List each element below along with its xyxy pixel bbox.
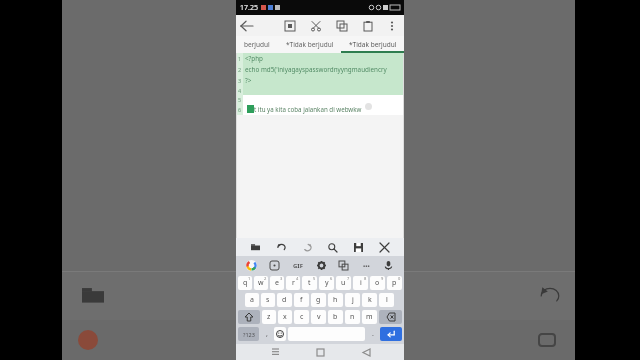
staticText: z: [267, 312, 271, 322]
staticText: g: [316, 295, 321, 305]
button[interactable]: ?123: [238, 327, 259, 341]
staticText: 3: [280, 276, 283, 281]
button[interactable]: Close: [378, 241, 391, 254]
staticText: 7: [347, 276, 350, 281]
button[interactable]: f: [294, 293, 309, 307]
button[interactable]: GIF: [290, 259, 306, 272]
button[interactable]: c: [294, 310, 309, 324]
staticText: v: [317, 312, 321, 322]
staticText: u: [341, 278, 346, 288]
button[interactable]: Paste: [358, 16, 378, 36]
button[interactable]: Search: [326, 241, 339, 254]
button[interactable]: s: [261, 293, 275, 307]
button[interactable]: Translate: [337, 259, 350, 272]
button[interactable]: .: [366, 327, 379, 341]
staticText: ?>: [245, 76, 252, 85]
button[interactable]: g: [311, 293, 326, 307]
button[interactable]: Redo: [301, 241, 314, 254]
staticText: d: [282, 295, 287, 305]
staticText: w: [258, 278, 264, 288]
button[interactable]: 2: [254, 276, 268, 290]
staticText: q: [243, 278, 248, 288]
button[interactable]: 4: [286, 276, 300, 290]
staticText: s: [266, 295, 270, 305]
button[interactable]: z: [262, 310, 276, 324]
staticText: y: [325, 278, 329, 288]
button[interactable]: 0: [387, 276, 402, 290]
button[interactable]: Recent apps: [268, 345, 282, 359]
button[interactable]: m: [362, 310, 377, 324]
button[interactable]: *Tidak berjudul: [341, 36, 404, 53]
staticText: ?123: [243, 331, 255, 338]
staticText: p: [392, 278, 397, 288]
staticText: 4: [238, 87, 242, 94]
button[interactable]: 7: [336, 276, 351, 290]
staticText: r: [292, 278, 295, 288]
staticText: k: [368, 295, 372, 305]
staticText: 9: [381, 276, 384, 281]
button[interactable]: Back: [359, 345, 373, 359]
staticText: x: [283, 312, 287, 322]
staticText: t: [308, 278, 311, 288]
button[interactable]: 9: [370, 276, 385, 290]
button[interactable]: 5: [302, 276, 317, 290]
button[interactable]: Settings: [315, 259, 328, 272]
staticText: 3: [238, 77, 242, 84]
staticText: <?php: [245, 54, 263, 63]
button[interactable]: Backspace: [379, 310, 402, 324]
button[interactable]: Back: [236, 15, 257, 36]
staticText: i: [360, 278, 362, 288]
staticText: 1: [238, 55, 242, 62]
button[interactable]: j: [345, 293, 360, 307]
button[interactable]: 3: [270, 276, 284, 290]
button[interactable]: d: [277, 293, 292, 307]
button[interactable]: More options: [382, 16, 402, 36]
staticText: c: [300, 312, 304, 322]
staticText: n: [350, 312, 355, 322]
button[interactable]: b: [328, 310, 343, 324]
button[interactable]: Copy: [332, 16, 352, 36]
button[interactable]: More: [360, 259, 373, 272]
button[interactable]: Undo: [275, 241, 288, 254]
staticText: h: [333, 295, 338, 305]
staticText: l: [386, 295, 388, 305]
staticText: 5: [238, 96, 242, 103]
button[interactable]: Save: [352, 241, 365, 254]
staticText: e: [275, 278, 279, 288]
button[interactable]: Voice input: [382, 259, 395, 272]
button[interactable]: n: [345, 310, 360, 324]
button[interactable]: 8: [353, 276, 368, 290]
staticText: 6: [330, 276, 333, 281]
button[interactable]: h: [328, 293, 343, 307]
button[interactable]: 1: [238, 276, 252, 290]
button[interactable]: x: [278, 310, 292, 324]
button[interactable]: Google: [245, 259, 258, 272]
button[interactable]: a: [245, 293, 259, 307]
button[interactable]: Cut: [306, 16, 326, 36]
button[interactable]: berjudul: [236, 36, 278, 53]
button[interactable]: Open file: [249, 241, 262, 254]
button[interactable]: Shift: [238, 310, 260, 324]
staticText: .: [372, 329, 374, 339]
button[interactable]: *Tidak berjudul: [278, 36, 341, 53]
button[interactable]: k: [362, 293, 377, 307]
button[interactable]: Home: [313, 345, 327, 359]
button[interactable]: Select all: [280, 16, 300, 36]
staticText: 17.25: [240, 3, 258, 13]
staticText: 2: [238, 66, 242, 73]
staticText: j: [352, 295, 354, 305]
button[interactable]: l: [379, 293, 394, 307]
staticText: m: [366, 312, 373, 322]
button[interactable]: Stickers: [268, 259, 281, 272]
button[interactable]: Emoji: [274, 327, 286, 341]
staticText: 0: [398, 276, 401, 281]
staticText: 1: [248, 276, 251, 281]
staticText: t itu ya kita coba jalankan di webwkw: [254, 105, 362, 113]
button[interactable]: 6: [319, 276, 334, 290]
staticText: echo md5('iniyagayspasswordnyyngmaudienc…: [245, 65, 387, 74]
staticText: 6: [238, 106, 242, 113]
button[interactable]: v: [311, 310, 326, 324]
button[interactable]: ,: [260, 327, 273, 341]
button[interactable]: Enter: [380, 327, 402, 341]
